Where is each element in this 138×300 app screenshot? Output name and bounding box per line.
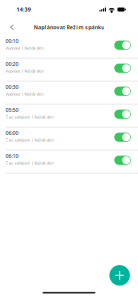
button[interactable]: 00:10 [0, 35, 138, 58]
staticText: 00:10 [6, 37, 19, 44]
staticText: Vypnout | Každý den [6, 45, 43, 50]
staticText: 00:30 [6, 83, 19, 90]
button[interactable]: 06:10 [0, 150, 138, 173]
button[interactable]: 05:50 [0, 104, 138, 127]
staticText: Čas zahájení | Každý den [6, 160, 53, 165]
staticText: 05:50 [6, 106, 19, 113]
staticText: Čas zahájení | Každý den [6, 137, 53, 142]
staticText: Čas zahájení | Každý den [6, 114, 53, 119]
staticText: 14:39 [16, 6, 31, 13]
button[interactable]: 06:00 [0, 127, 138, 150]
staticText: 06:00 [6, 129, 19, 136]
staticText: 06:10 [6, 152, 19, 159]
staticText: 00:20 [6, 60, 19, 67]
button[interactable]: Back [0, 22, 20, 33]
staticText: Naplánovat Režim spánku [34, 24, 104, 31]
staticText: Vypnout | Každý den [6, 68, 43, 73]
button[interactable]: 00:20 [0, 58, 138, 81]
button[interactable]: Add schedule [109, 265, 130, 286]
staticText: Vypnout | Každý den [6, 91, 43, 96]
button[interactable]: 00:30 [0, 81, 138, 104]
